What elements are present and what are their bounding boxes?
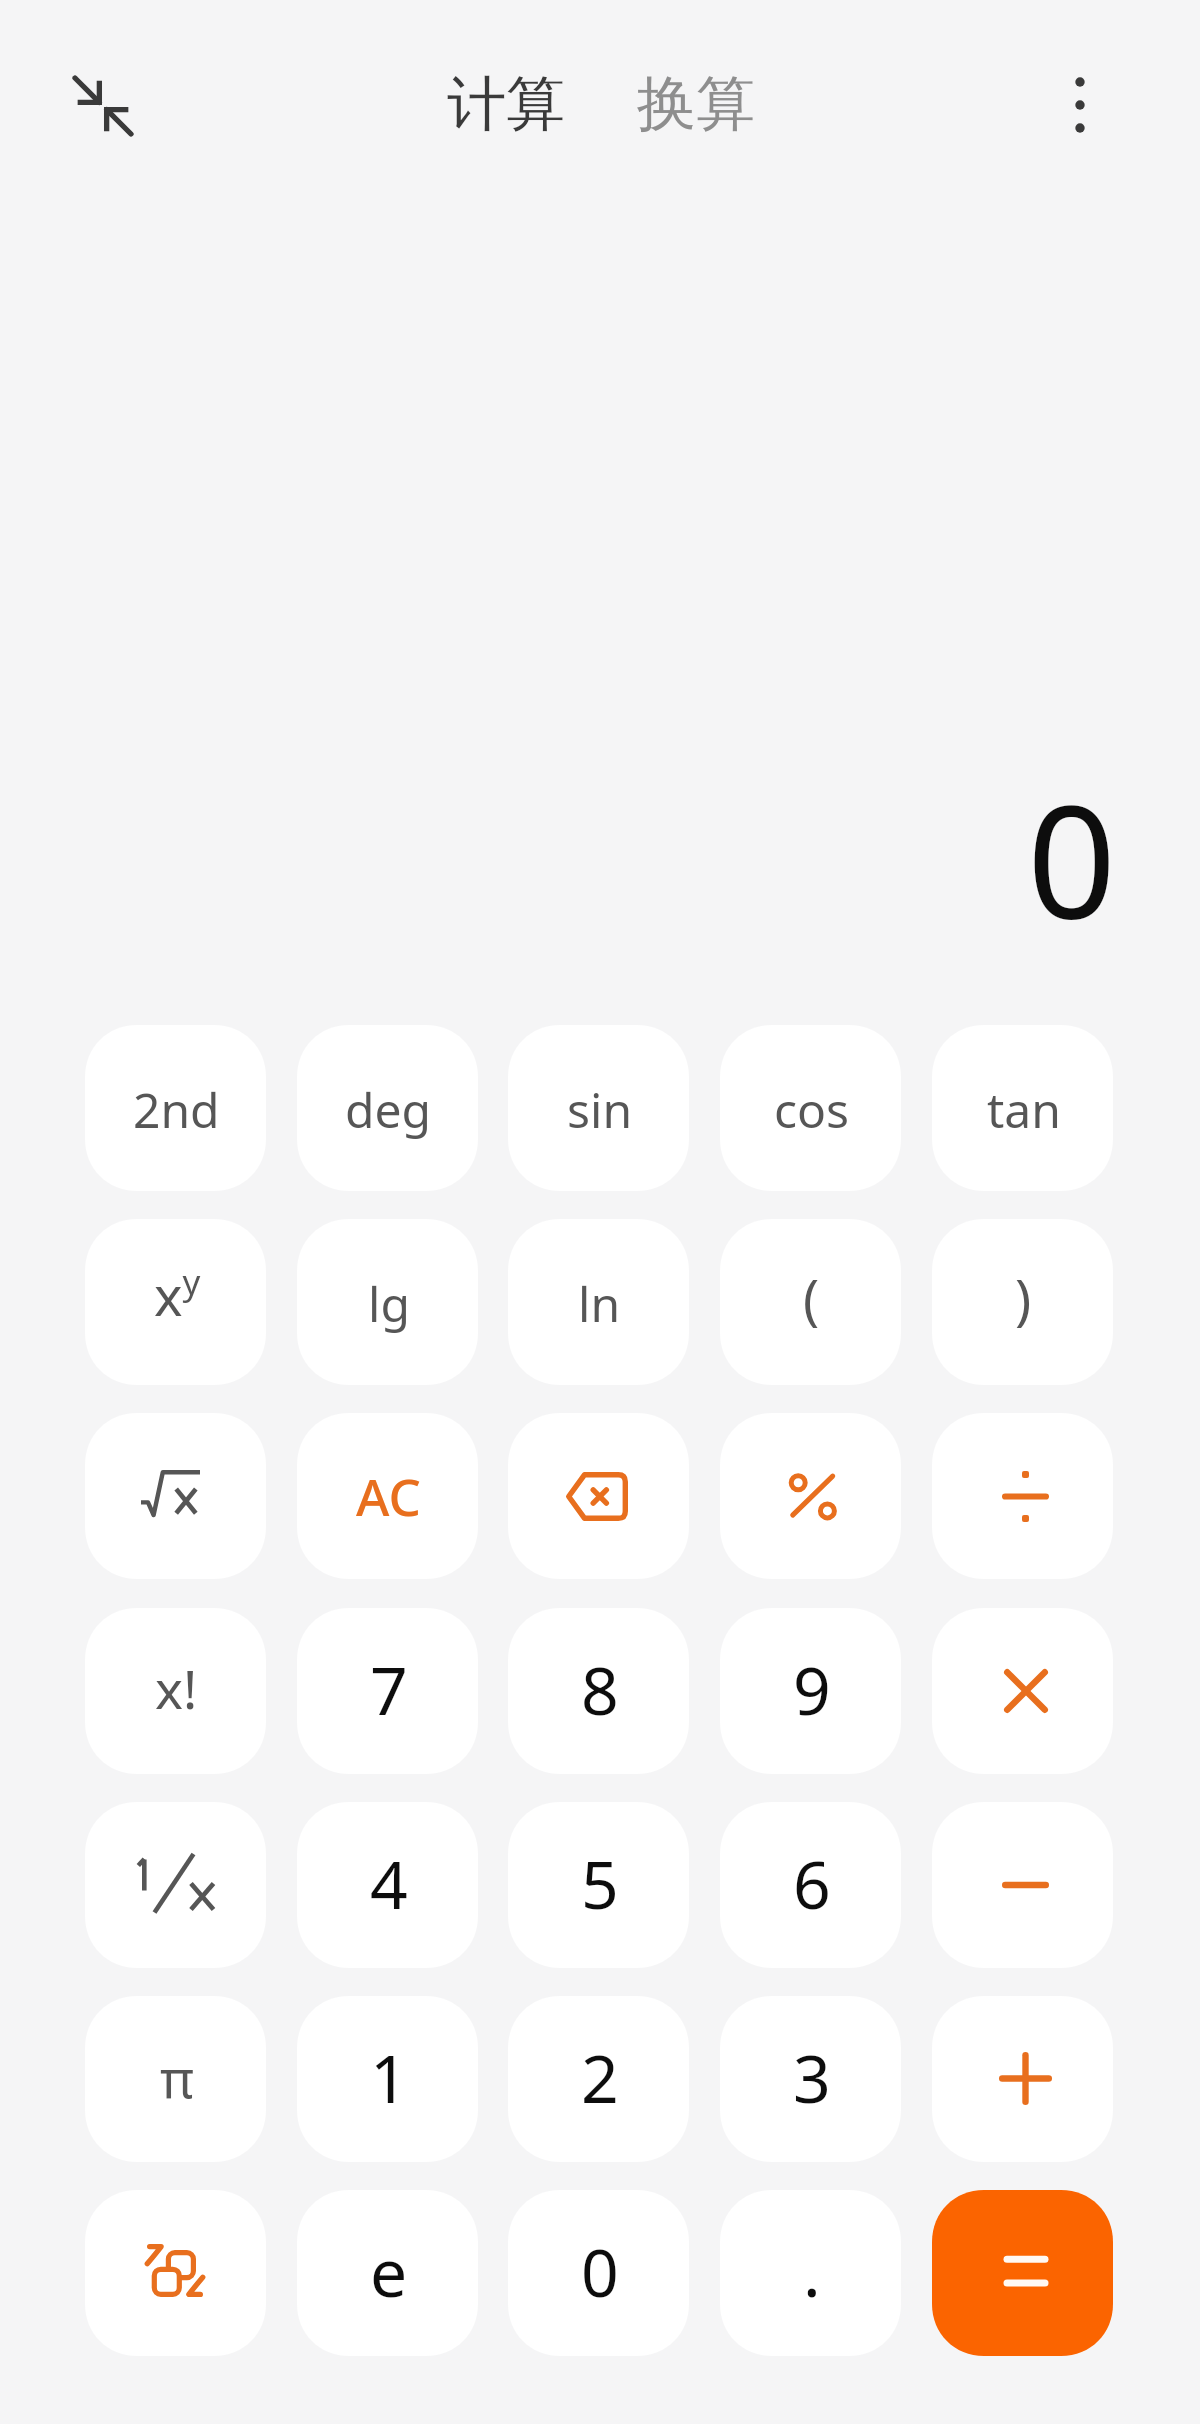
button[interactable]: Percent xyxy=(720,1413,901,1579)
button[interactable]: e xyxy=(297,2190,478,2356)
button[interactable]: π xyxy=(85,1996,266,2162)
button[interactable]: Minus xyxy=(932,1802,1113,1968)
button[interactable]: . xyxy=(720,2190,901,2356)
button[interactable]: Multiply xyxy=(932,1608,1113,1774)
staticText: x! xyxy=(155,1652,198,1724)
button[interactable]: 4 xyxy=(297,1802,478,1968)
staticText: AC xyxy=(356,1461,421,1530)
button[interactable]: One over x xyxy=(85,1802,266,1968)
button[interactable]: ln xyxy=(508,1219,689,1385)
button[interactable]: 5 xyxy=(508,1802,689,1968)
button[interactable]: ( xyxy=(720,1219,901,1385)
staticText: 5 xyxy=(581,1838,619,1928)
staticText: sin xyxy=(567,1077,633,1142)
button[interactable]: 换算 xyxy=(637,67,755,139)
staticText: xy xyxy=(154,1258,201,1332)
button[interactable]: Power xyxy=(85,1219,266,1385)
button[interactable]: cos xyxy=(720,1025,901,1191)
button[interactable]: Square root xyxy=(85,1413,266,1579)
staticText: 7 xyxy=(370,1644,408,1734)
button[interactable]: 3 xyxy=(720,1996,901,2162)
button[interactable]: Equals xyxy=(932,2190,1113,2356)
button[interactable]: lg xyxy=(297,1219,478,1385)
staticText: π xyxy=(160,2042,194,2113)
staticText: . xyxy=(803,2226,821,2316)
button[interactable]: Plus xyxy=(932,1996,1113,2162)
staticText: 6 xyxy=(793,1838,831,1928)
staticText: 0 xyxy=(1027,751,1117,963)
staticText: lg xyxy=(368,1271,410,1336)
staticText: 4 xyxy=(370,1838,408,1928)
button[interactable]: deg xyxy=(297,1025,478,1191)
staticText: tan xyxy=(987,1077,1061,1142)
button[interactable]: Unit convert xyxy=(85,2190,266,2356)
button[interactable]: tan xyxy=(932,1025,1113,1191)
button[interactable]: AC xyxy=(297,1413,478,1579)
staticText: ) xyxy=(1015,1261,1032,1335)
staticText: ( xyxy=(803,1261,820,1335)
staticText: 计算 xyxy=(447,67,565,139)
button[interactable]: Collapse xyxy=(57,60,149,152)
button[interactable]: ) xyxy=(932,1219,1113,1385)
button[interactable]: 7 xyxy=(297,1608,478,1774)
button[interactable]: 1 xyxy=(297,1996,478,2162)
button[interactable]: 6 xyxy=(720,1802,901,1968)
staticText: ln xyxy=(578,1271,621,1336)
staticText: 8 xyxy=(581,1644,619,1734)
button[interactable]: sin xyxy=(508,1025,689,1191)
staticText: 2nd xyxy=(133,1077,220,1142)
staticText: 9 xyxy=(793,1644,831,1734)
button[interactable]: 8 xyxy=(508,1608,689,1774)
staticText: 3 xyxy=(793,2032,831,2122)
staticText: 2 xyxy=(581,2032,619,2122)
button[interactable]: x! xyxy=(85,1608,266,1774)
staticText: 1 xyxy=(370,2032,408,2122)
button[interactable]: Backspace xyxy=(508,1413,689,1579)
staticText: e xyxy=(370,2226,408,2316)
button[interactable]: 计算 xyxy=(447,67,565,139)
staticText: 换算 xyxy=(637,67,755,139)
button[interactable]: 9 xyxy=(720,1608,901,1774)
button[interactable]: 2nd xyxy=(85,1025,266,1191)
button[interactable]: 2 xyxy=(508,1996,689,2162)
staticText: deg xyxy=(345,1077,432,1142)
button[interactable]: More options xyxy=(1034,59,1126,151)
button[interactable]: 0 xyxy=(508,2190,689,2356)
staticText: cos xyxy=(774,1077,850,1142)
staticText: 0 xyxy=(581,2226,619,2316)
button[interactable]: Divide xyxy=(932,1413,1113,1579)
